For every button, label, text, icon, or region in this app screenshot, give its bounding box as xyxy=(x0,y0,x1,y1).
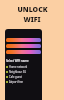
button[interactable]: Neighbour 5G xyxy=(6,69,41,74)
staticText: Neighbour 5G xyxy=(9,70,27,74)
staticText: UNLOCK xyxy=(17,5,48,15)
staticText: Select WiFi name xyxy=(6,59,29,63)
button[interactable] xyxy=(6,38,41,42)
staticText: Home network xyxy=(9,65,28,69)
button[interactable]: Airport free xyxy=(6,79,41,84)
button[interactable]: Home network xyxy=(6,64,41,69)
staticText: Airport free xyxy=(9,80,24,84)
button[interactable] xyxy=(6,50,41,54)
staticText: WIFI xyxy=(23,15,41,25)
staticText: Cafe guest xyxy=(9,75,22,79)
button[interactable] xyxy=(6,44,41,48)
button[interactable]: Cafe guest xyxy=(6,74,41,79)
